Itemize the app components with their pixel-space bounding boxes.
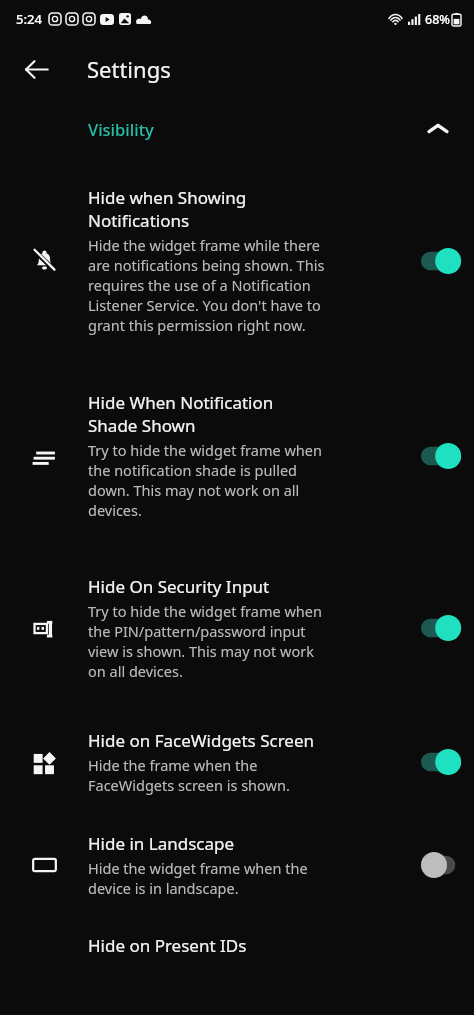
staticText: Hide in Landscape [88, 832, 235, 855]
button[interactable]: Hide On Security Input [0, 548, 474, 708]
button[interactable]: Visibility [0, 100, 474, 158]
staticText: Hide the widget frame while there are no… [88, 235, 325, 335]
staticText: 5:24 [16, 10, 42, 28]
staticText: Hide On Security Input [88, 575, 270, 598]
button[interactable]: Back [10, 43, 62, 95]
staticText: Hide on FaceWidgets Screen [88, 729, 315, 752]
staticText: Hide When Notification Shade Shown [88, 391, 274, 437]
button[interactable]: Hide When Notification Shade Shown [0, 363, 474, 548]
button[interactable]: Hide on FaceWidgets Screen [0, 708, 474, 815]
staticText: 68% [425, 11, 450, 28]
button[interactable]: Hide when Showing Notifications [0, 158, 474, 363]
button[interactable]: On [412, 237, 474, 285]
staticText: Hide the widget frame when the device is… [88, 858, 308, 898]
button[interactable]: On [412, 738, 474, 786]
button[interactable]: Hide on Present IDs [0, 915, 474, 975]
button[interactable]: On [412, 604, 474, 652]
button[interactable]: Off [412, 841, 474, 889]
staticText: Hide when Showing Notifications [88, 186, 247, 232]
staticText: Settings [87, 54, 171, 84]
staticText: Hide on Present IDs [88, 934, 247, 957]
staticText: Try to hide the widget frame when the no… [88, 440, 322, 520]
button[interactable]: Hide in Landscape [0, 815, 474, 915]
button[interactable]: On [412, 432, 474, 480]
staticText: Visibility [88, 118, 154, 140]
staticText: Hide the frame when the FaceWidgets scre… [88, 755, 290, 795]
staticText: Try to hide the widget frame when the PI… [88, 601, 322, 681]
